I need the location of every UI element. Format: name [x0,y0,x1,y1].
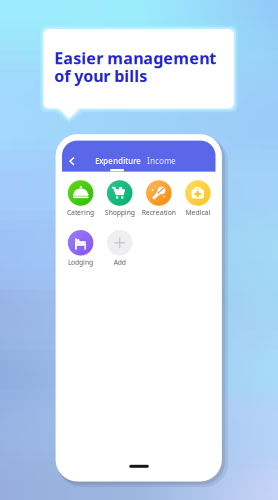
staticText: Catering [67,208,94,217]
staticText: Recreation [142,208,176,217]
staticText: Easier management [54,47,216,69]
staticText: Medical [185,208,210,217]
staticText: of your bills [54,65,147,86]
staticText: Income [147,156,176,166]
staticText: Shopping [105,208,135,217]
staticText: Expenditure [95,156,141,166]
staticText: Add [114,258,126,267]
staticText: Lodging [68,258,93,267]
